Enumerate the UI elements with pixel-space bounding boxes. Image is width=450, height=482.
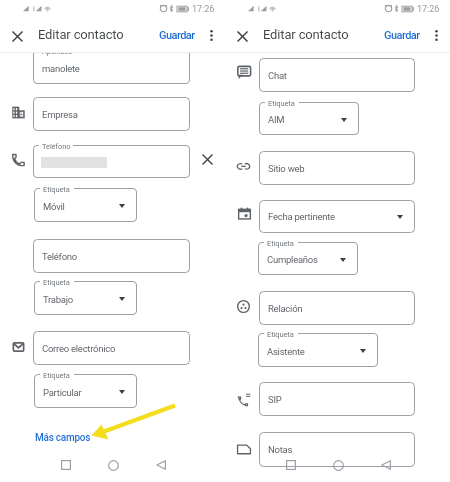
button[interactable]: Más campos	[34, 430, 92, 446]
staticText: Empresa	[42, 109, 78, 120]
button[interactable]: Guardar	[383, 26, 421, 45]
button[interactable]: Cerrar	[8, 27, 27, 46]
staticText: Etiqueta	[43, 278, 70, 287]
staticText: manolete	[42, 63, 80, 74]
staticText: Más campos	[35, 432, 91, 444]
staticText: AIM	[268, 114, 285, 125]
staticText: Guardar	[159, 29, 195, 42]
staticText: Etiqueta	[43, 371, 70, 380]
button[interactable]: Recientes	[54, 453, 78, 477]
staticText: Fecha pertinente	[268, 211, 335, 222]
staticText: Etiqueta	[267, 239, 294, 248]
staticText: SIP	[268, 394, 282, 405]
staticText: Particular	[43, 387, 82, 398]
staticText: Sitio web	[268, 163, 305, 174]
staticText: Teléfono	[42, 251, 77, 262]
staticText: Etiqueta	[268, 99, 295, 108]
staticText: Etiqueta	[267, 330, 294, 339]
staticText: Apellidos	[42, 47, 73, 56]
staticText: Etiqueta	[43, 185, 70, 194]
button[interactable]: Inicio	[326, 453, 350, 477]
staticText: Notas	[268, 444, 293, 455]
button[interactable]: Borrar	[198, 150, 217, 169]
staticText: 17:26	[417, 4, 440, 15]
staticText: Guardar	[384, 29, 420, 42]
staticText: Trabajo	[43, 294, 73, 305]
button[interactable]: Más opciones	[202, 26, 221, 45]
staticText: Teléfono	[42, 142, 71, 151]
staticText: 17:26	[192, 4, 215, 15]
button[interactable]: Guardar	[158, 26, 196, 45]
staticText: Relación	[268, 303, 303, 314]
staticText: Correo electrónico	[42, 343, 116, 354]
button[interactable]: Más opciones	[427, 26, 446, 45]
button[interactable]: Inicio	[101, 453, 125, 477]
staticText: Móvil	[43, 201, 65, 212]
button[interactable]: Atrás	[149, 453, 173, 477]
staticText: Cumpleaños	[267, 254, 318, 265]
button[interactable]: Recientes	[279, 453, 303, 477]
staticText: Editar contacto	[38, 27, 124, 42]
staticText: Chat	[268, 70, 287, 81]
staticText: Editar contacto	[263, 27, 349, 42]
staticText: Asistente	[267, 346, 305, 357]
button[interactable]: Atrás	[374, 453, 398, 477]
button[interactable]: Cerrar	[233, 27, 252, 46]
